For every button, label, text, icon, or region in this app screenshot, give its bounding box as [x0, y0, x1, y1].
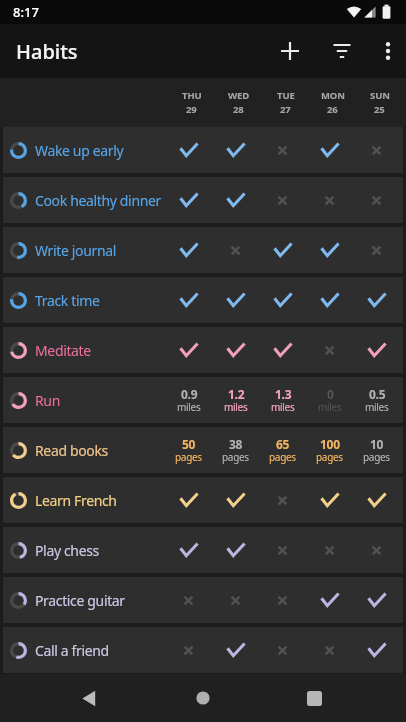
button[interactable]: Call a friend	[3, 627, 403, 673]
button[interactable]	[306, 177, 353, 223]
button[interactable]	[353, 227, 400, 273]
button[interactable]: 38	[212, 427, 259, 473]
staticText: Write journal	[35, 241, 116, 260]
staticText: WED	[228, 89, 250, 102]
button[interactable]	[259, 577, 306, 623]
button[interactable]	[212, 527, 259, 573]
button[interactable]	[306, 327, 353, 373]
button[interactable]: 65	[259, 427, 306, 473]
button[interactable]	[353, 627, 400, 673]
staticText: miles	[318, 400, 342, 414]
button[interactable]: Write journal	[3, 227, 403, 273]
button[interactable]	[165, 527, 212, 573]
staticText: pages	[269, 450, 296, 464]
button[interactable]	[259, 177, 306, 223]
button[interactable]	[165, 277, 212, 323]
staticText: Cook healthy dinner	[35, 191, 161, 210]
button[interactable]	[259, 227, 306, 273]
button[interactable]	[212, 127, 259, 173]
staticText: SUN	[370, 89, 390, 102]
button[interactable]	[353, 477, 400, 523]
button[interactable]: Play chess	[3, 527, 403, 573]
button[interactable]: Meditate	[3, 327, 403, 373]
staticText: miles	[271, 400, 295, 414]
button[interactable]	[259, 127, 306, 173]
button[interactable]: Learn French	[3, 477, 403, 523]
button[interactable]	[165, 177, 212, 223]
button[interactable]	[306, 127, 353, 173]
button[interactable]	[259, 277, 306, 323]
button[interactable]	[322, 31, 362, 71]
staticText: 8:17	[13, 3, 39, 21]
button[interactable]	[306, 277, 353, 323]
button[interactable]	[165, 127, 212, 173]
button[interactable]	[212, 177, 259, 223]
button[interactable]	[165, 577, 212, 623]
button[interactable]	[306, 577, 353, 623]
button[interactable]	[353, 127, 400, 173]
staticText: Wake up early	[35, 141, 124, 160]
button[interactable]	[165, 627, 212, 673]
staticText: 100	[320, 436, 340, 452]
button[interactable]: 1.3	[259, 377, 306, 423]
button[interactable]	[306, 627, 353, 673]
button[interactable]: 50	[165, 427, 212, 473]
button[interactable]	[183, 678, 223, 718]
button[interactable]: 100	[306, 427, 353, 473]
staticText: miles	[177, 400, 201, 414]
button[interactable]	[259, 527, 306, 573]
button[interactable]: 10	[353, 427, 400, 473]
staticText: 25	[374, 103, 385, 116]
button[interactable]	[270, 31, 310, 71]
button[interactable]	[306, 477, 353, 523]
button[interactable]: 1.2	[212, 377, 259, 423]
button[interactable]: Cook healthy dinner	[3, 177, 403, 223]
staticText: Run	[35, 391, 60, 410]
button[interactable]: Track time	[3, 277, 403, 323]
button[interactable]	[259, 327, 306, 373]
staticText: pages	[175, 450, 202, 464]
staticText: pages	[363, 450, 390, 464]
button[interactable]	[212, 227, 259, 273]
staticText: 50	[182, 436, 196, 452]
button[interactable]	[212, 577, 259, 623]
button[interactable]: Run	[3, 377, 403, 423]
button[interactable]	[353, 277, 400, 323]
button[interactable]	[306, 227, 353, 273]
button[interactable]	[259, 477, 306, 523]
staticText: 0	[327, 386, 334, 402]
staticText: THU	[182, 89, 202, 102]
button[interactable]	[212, 627, 259, 673]
button[interactable]	[353, 527, 400, 573]
staticText: 28	[233, 103, 244, 116]
staticText: 29	[186, 103, 197, 116]
staticText: 1.2	[228, 386, 245, 402]
button[interactable]	[69, 678, 109, 718]
button[interactable]: Practice guitar	[3, 577, 403, 623]
staticText: miles	[224, 400, 248, 414]
button[interactable]	[294, 678, 334, 718]
button[interactable]	[353, 177, 400, 223]
staticText: 27	[280, 103, 291, 116]
button[interactable]	[259, 627, 306, 673]
button[interactable]	[165, 477, 212, 523]
button[interactable]	[212, 277, 259, 323]
button[interactable]	[353, 327, 400, 373]
button[interactable]: Wake up early	[3, 127, 403, 173]
button[interactable]	[212, 327, 259, 373]
button[interactable]	[165, 227, 212, 273]
button[interactable]	[368, 31, 406, 71]
button[interactable]	[353, 577, 400, 623]
button[interactable]: 0.5	[353, 377, 400, 423]
button[interactable]: 0	[306, 377, 353, 423]
button[interactable]: Read books	[3, 427, 403, 473]
button[interactable]	[212, 477, 259, 523]
button[interactable]: 0.9	[165, 377, 212, 423]
staticText: Call a friend	[35, 641, 109, 660]
button[interactable]	[165, 327, 212, 373]
staticText: Read books	[35, 441, 108, 460]
staticText: TUE	[277, 89, 295, 102]
button[interactable]	[306, 527, 353, 573]
staticText: pages	[222, 450, 249, 464]
staticText: 10	[370, 436, 384, 452]
